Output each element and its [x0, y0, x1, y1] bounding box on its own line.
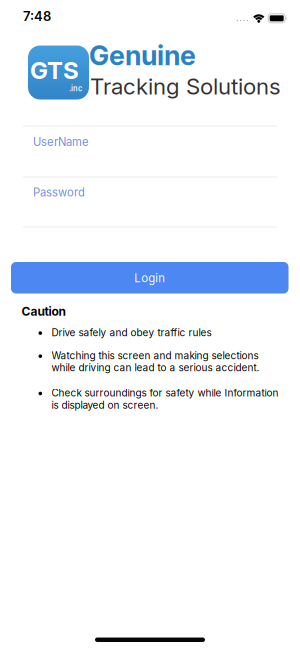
staticText: while driving can lead to a serious acci… [51, 362, 259, 374]
staticText: 7:48 [23, 8, 51, 24]
staticText: Drive safely and obey traffic rules [51, 326, 211, 339]
button[interactable]: Login [11, 262, 288, 293]
staticText: .inc [69, 84, 82, 93]
button[interactable]: Password [0, 177, 300, 227]
staticText: Login [134, 271, 165, 285]
staticText: UserName [33, 135, 89, 149]
staticText: is displayed on screen. [51, 399, 158, 411]
staticText: Caution [21, 304, 65, 318]
button[interactable]: UserName [0, 126, 300, 177]
staticText: Check surroundings for safety while Info… [51, 387, 278, 399]
staticText: Genuine [89, 39, 196, 72]
staticText: GTS [30, 56, 79, 85]
staticText: Tracking Solutions [90, 73, 281, 100]
staticText: Password [33, 186, 85, 199]
staticText: Watching this screen and making selectio… [51, 350, 258, 362]
